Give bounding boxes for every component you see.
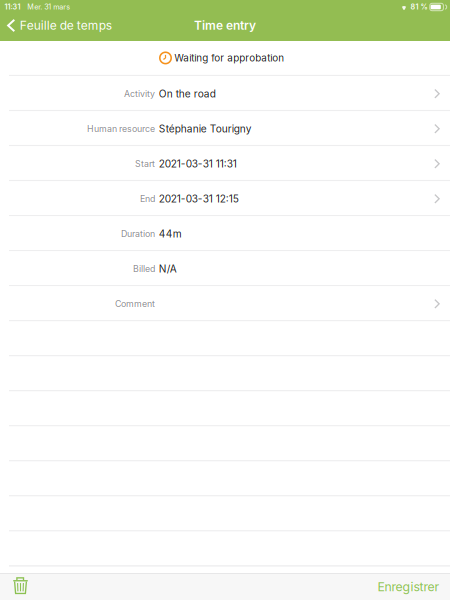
button[interactable]: Activity [0,76,450,111]
staticText: Waiting for approbation [174,52,284,64]
staticText: Billed [133,263,155,274]
staticText: 2021-03-31 12:15 [159,193,239,205]
staticText: Human resource [87,123,155,134]
staticText: Stéphanie Tourigny [159,123,252,135]
staticText: 2021-03-31 11:31 [159,158,237,170]
staticText: Comment [115,298,155,309]
staticText: N/A [159,263,177,275]
button[interactable]: Delete [0,574,28,600]
button[interactable]: End [0,181,450,216]
button[interactable]: Enregistrer [377,574,450,600]
staticText: 44m [159,228,182,240]
staticText: Duration [121,228,155,239]
button[interactable]: Start [0,146,450,181]
staticText: Start [135,158,155,169]
staticText: Time entry [194,18,256,33]
button[interactable]: Duration [0,216,450,251]
staticText: 81 % [411,3,428,11]
staticText: Feuille de temps [20,18,112,33]
button[interactable]: Billed [0,251,450,286]
staticText: End [140,193,155,204]
staticText: Mer. 31 mars [27,3,70,11]
staticText: Activity [124,88,155,99]
staticText: 11:31 [5,3,21,11]
button[interactable]: Feuille de temps [0,14,112,37]
staticText: Enregistrer [377,579,439,594]
staticText: On the road [159,88,216,100]
button[interactable]: Comment [0,286,450,321]
button[interactable]: Human resource [0,111,450,146]
